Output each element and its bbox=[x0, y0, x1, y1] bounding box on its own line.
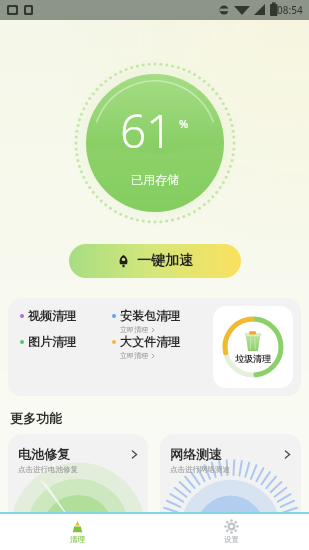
button[interactable]: 图片清理 bbox=[16, 334, 108, 349]
button[interactable]: 安装包清理 bbox=[108, 308, 213, 334]
staticText: 已用存储 bbox=[131, 172, 179, 187]
staticText: 电池修复 bbox=[18, 446, 70, 462]
button[interactable]: 视频清理 bbox=[16, 308, 108, 323]
staticText: 网络测速 bbox=[170, 446, 222, 462]
staticText: 图片清理 bbox=[28, 334, 76, 349]
staticText: 设置 bbox=[224, 535, 239, 544]
button[interactable]: 一键加速 bbox=[69, 244, 241, 278]
staticText: 大文件清理 bbox=[120, 334, 180, 349]
staticText: 08:54 bbox=[277, 3, 303, 17]
staticText: 61 bbox=[120, 99, 173, 162]
button[interactable]: 大文件清理 bbox=[108, 334, 213, 360]
button[interactable]: 垃圾清理 bbox=[213, 306, 293, 388]
staticText: 更多功能 bbox=[10, 410, 62, 426]
staticText: % bbox=[179, 116, 189, 131]
button[interactable]: 网络测速 bbox=[160, 434, 301, 529]
staticText: 垃圾清理 bbox=[235, 353, 271, 364]
staticText: 立即清理 bbox=[120, 325, 148, 334]
staticText: 一键加速 bbox=[137, 252, 193, 270]
button[interactable]: 电池修复 bbox=[8, 434, 148, 529]
other: 清理 bbox=[71, 520, 84, 533]
staticText: 点击进行电池修复 bbox=[18, 465, 78, 474]
button[interactable]: 清理 bbox=[0, 514, 154, 550]
staticText: 安装包清理 bbox=[120, 308, 180, 323]
other: 设置 bbox=[225, 520, 238, 533]
staticText: 视频清理 bbox=[28, 308, 76, 323]
staticText: 点击进行网络测速 bbox=[170, 465, 230, 474]
staticText: 清理 bbox=[70, 535, 85, 544]
staticText: 立即清理 bbox=[120, 351, 148, 360]
button[interactable]: 设置 bbox=[154, 514, 309, 550]
